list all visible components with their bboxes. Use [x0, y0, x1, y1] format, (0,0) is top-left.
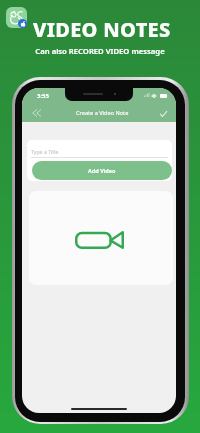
- button[interactable]: Back: [28, 106, 44, 119]
- staticText: VIDEO NOTES: [33, 16, 171, 43]
- staticText: 3:55: [37, 92, 49, 100]
- button[interactable]: Add Video: [32, 161, 172, 180]
- staticText: Add Video: [88, 167, 116, 175]
- staticText: Create a Video Note: [76, 109, 129, 117]
- staticText: Can also RECORED VIDEO message: [0, 46, 200, 56]
- staticText: Type a Title: [31, 148, 59, 155]
- button[interactable]: Save: [155, 106, 171, 119]
